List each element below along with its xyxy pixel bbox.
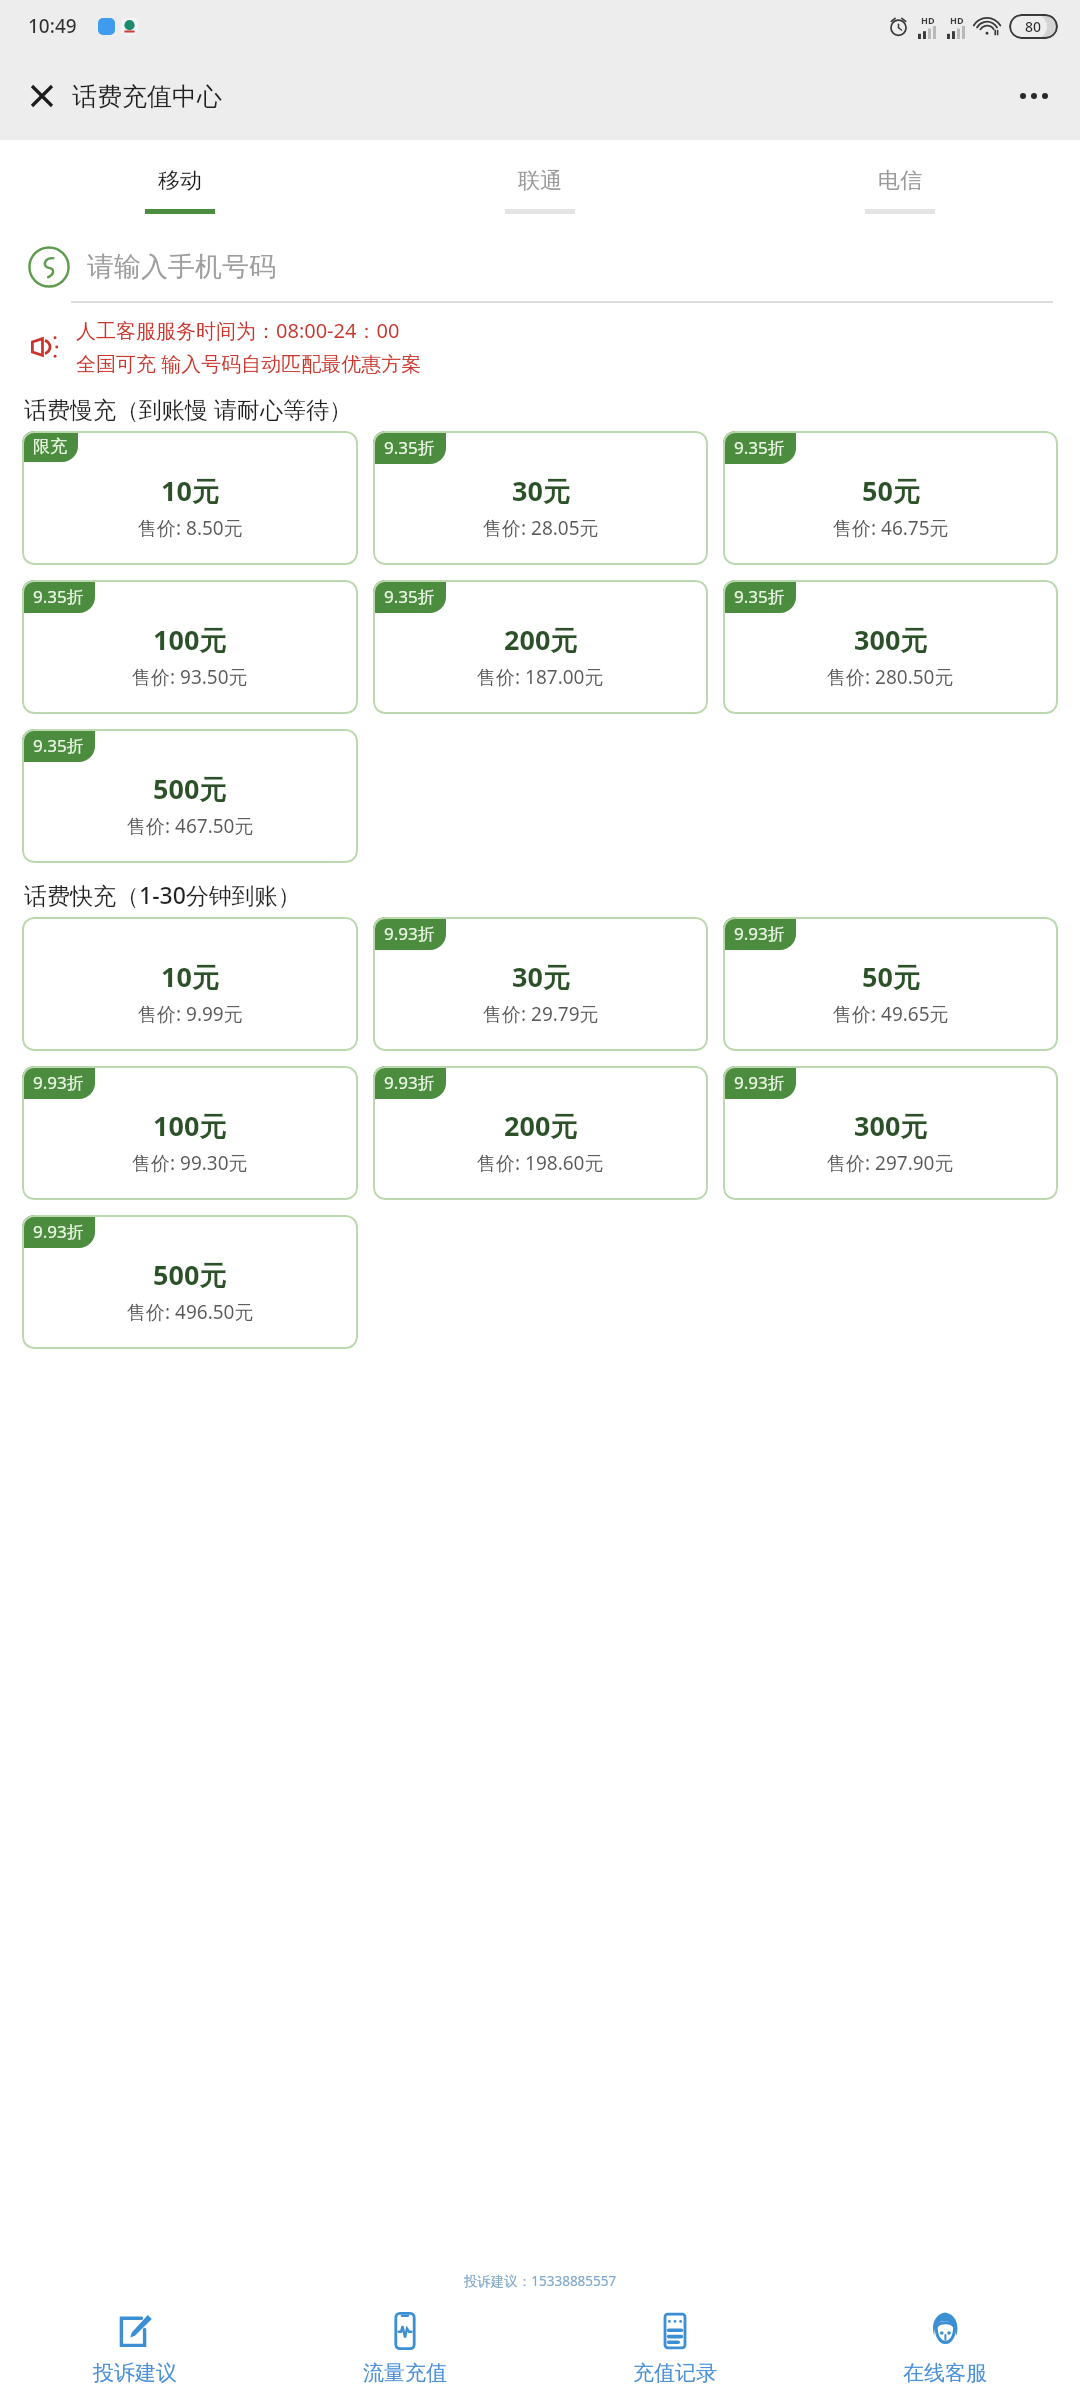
staticText: 话费充值中心 (72, 81, 222, 112)
staticText: 售价: 280.50元 (827, 664, 954, 690)
button[interactable]: 9.35折 (373, 431, 708, 565)
button[interactable]: 9.93折 (373, 917, 708, 1051)
staticText: 9.35折 (384, 436, 435, 459)
staticText: 售价: 297.90元 (827, 1150, 954, 1176)
staticText: 全国可充 输入号码自动匹配最优惠方案 (76, 350, 422, 377)
button[interactable]: 9.35折 (22, 580, 358, 714)
staticText: 售价: 496.50元 (127, 1299, 254, 1325)
button[interactable]: 9.35折 (723, 431, 1058, 565)
staticText: 售价: 93.50元 (132, 664, 248, 690)
staticText: 9.35折 (734, 585, 785, 608)
staticText: 9.35折 (384, 585, 435, 608)
button[interactable]: More options (1010, 72, 1058, 120)
staticText: 9.93折 (384, 922, 435, 945)
button[interactable]: 限充 (22, 431, 358, 565)
button[interactable]: Close (20, 74, 222, 118)
staticText: 话费快充（1-30分钟到账） (24, 879, 301, 910)
staticText: 售价: 8.50元 (138, 515, 243, 541)
staticText: 售价: 467.50元 (127, 813, 254, 839)
staticText: 在线客服 (903, 2360, 987, 2386)
button[interactable]: 9.93折 (723, 917, 1058, 1051)
button[interactable]: 9.93折 (373, 1066, 708, 1200)
staticText: 售价: 46.75元 (833, 515, 949, 541)
button[interactable]: 流量充值 (270, 2304, 540, 2390)
button[interactable]: 9.35折 (723, 580, 1058, 714)
staticText: 流量充值 (363, 2360, 447, 2386)
staticText: 500元 (153, 770, 227, 807)
staticText: 9.93折 (734, 922, 785, 945)
staticText: 请输入手机号码 (87, 250, 276, 284)
staticText: 200元 (504, 621, 578, 658)
staticText: 500元 (153, 1256, 227, 1293)
staticText: 80 (1025, 17, 1042, 36)
staticText: 投诉建议：15338885557 (0, 2272, 1080, 2290)
staticText: 30元 (512, 958, 570, 995)
staticText: 50元 (862, 472, 920, 509)
staticText: 300元 (854, 621, 928, 658)
button[interactable]: 移动 (0, 140, 360, 233)
staticText: 移动 (158, 167, 202, 195)
staticText: 100元 (153, 621, 227, 658)
button[interactable]: 10元 (22, 917, 358, 1051)
staticText: 人工客服服务时间为：08:00-24：00 (76, 317, 400, 344)
staticText: 30元 (512, 472, 570, 509)
staticText: 售价: 29.79元 (483, 1001, 599, 1027)
button[interactable]: 电信 (720, 140, 1080, 233)
staticText: 售价: 198.60元 (477, 1150, 604, 1176)
staticText: 9.35折 (734, 436, 785, 459)
staticText: 售价: 49.65元 (833, 1001, 949, 1027)
staticText: 售价: 9.99元 (138, 1001, 243, 1027)
staticText: 联通 (518, 167, 562, 195)
button[interactable]: 9.93折 (723, 1066, 1058, 1200)
button[interactable]: 投诉建议 (0, 2304, 270, 2390)
staticText: 200元 (504, 1107, 578, 1144)
staticText: 9.93折 (33, 1220, 84, 1243)
button[interactable]: 充值记录 (540, 2304, 810, 2390)
other: Close (20, 74, 64, 118)
staticText: 100元 (153, 1107, 227, 1144)
staticText: 售价: 99.30元 (132, 1150, 248, 1176)
staticText: 9.35折 (33, 734, 84, 757)
staticText: 300元 (854, 1107, 928, 1144)
staticText: 9.93折 (33, 1071, 84, 1094)
staticText: 话费慢充（到账慢 请耐心等待） (24, 393, 352, 424)
staticText: 50元 (862, 958, 920, 995)
staticText: 充值记录 (633, 2360, 717, 2386)
staticText: 售价: 187.00元 (477, 664, 604, 690)
staticText: HD (950, 14, 964, 26)
staticText: 10元 (161, 958, 219, 995)
staticText: 9.93折 (384, 1071, 435, 1094)
staticText: 投诉建议 (93, 2360, 177, 2386)
staticText: 电信 (878, 167, 922, 195)
staticText: 限充 (33, 436, 67, 457)
staticText: 10:49 (28, 13, 77, 39)
button[interactable]: 联通 (360, 140, 720, 233)
staticText: 9.35折 (33, 585, 84, 608)
staticText: 10元 (161, 472, 219, 509)
staticText: 售价: 28.05元 (483, 515, 599, 541)
button[interactable]: 9.35折 (22, 729, 358, 863)
button[interactable]: 9.93折 (22, 1066, 358, 1200)
button[interactable]: 在线客服 (810, 2304, 1080, 2390)
staticText: HD (921, 14, 935, 26)
button[interactable]: 9.93折 (22, 1215, 358, 1349)
staticText: 9.93折 (734, 1071, 785, 1094)
button[interactable]: 9.35折 (373, 580, 708, 714)
